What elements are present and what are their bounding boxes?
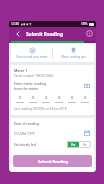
button[interactable]: Scan meter with camera [83,82,91,90]
button[interactable]: Back [9,27,26,40]
staticText: Serial number 10K07C0863 [14,74,54,78]
staticText: Yes [71,143,76,147]
button[interactable]: Meter reading tips [53,44,94,62]
staticText: Last reading: 000000 on 04 Jun 2018 [14,107,67,111]
staticText: 18% [81,22,88,26]
staticText: Meter 1 [14,68,28,73]
staticText: No [83,143,87,147]
staticText: from the meter [14,86,39,91]
staticText: 0 [19,95,22,101]
staticText: 12:30 [11,22,20,26]
staticText: 0 [84,95,87,101]
staticText: Submit Reading [26,31,63,37]
staticText: 0 [58,95,61,101]
button[interactable]: Submit Reading [13,155,92,167]
button[interactable]: Yes [67,141,79,148]
staticText: Submit Reading [38,159,68,164]
staticText: Exclusively fed [14,143,36,147]
button[interactable]: Pick date [83,129,91,137]
staticText: Date of reading [14,121,39,126]
button[interactable]: No [79,141,91,148]
staticText: Meter reading tips [61,55,86,59]
staticText: 0 [45,95,48,101]
staticText: 0 [32,95,35,101]
staticText: How to read your meter [16,55,48,59]
staticText: DD-MM-YYYY [14,131,35,136]
staticText: 0 [71,95,74,101]
button[interactable]: Help [83,27,96,40]
button[interactable]: How to read your meter [11,44,52,62]
staticText: Enter meter reading [14,81,47,86]
